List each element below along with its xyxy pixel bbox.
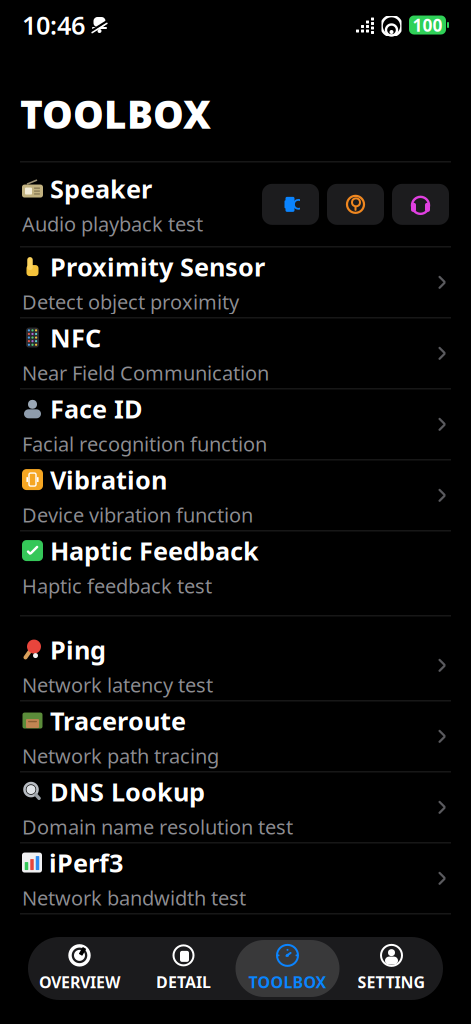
staticText: SETTING [357, 971, 425, 993]
button[interactable]: OVERVIEW [27, 940, 131, 997]
staticText: Face ID [50, 392, 143, 425]
staticText: Vibration [50, 463, 167, 496]
staticText: Facial recognition function [22, 430, 267, 457]
button[interactable]: Face ID [0, 389, 471, 459]
button[interactable]: SETTING [339, 940, 443, 997]
staticText: TOOLBOX [248, 971, 326, 993]
staticText: Near Field Communication [22, 359, 269, 386]
button[interactable]: Traceroute [0, 701, 471, 771]
staticText: Network latency test [22, 671, 213, 698]
button[interactable]: Play through headphones [392, 184, 449, 225]
staticText: iPerf3 [49, 846, 123, 879]
staticText: Audio playback test [22, 210, 203, 237]
staticText: Speaker [50, 172, 152, 205]
button[interactable]: Play through speaker [262, 184, 319, 225]
button[interactable]: TOOLBOX [235, 940, 339, 997]
button[interactable]: Play through receiver [327, 184, 384, 225]
staticText: Traceroute [50, 704, 186, 737]
staticText: OVERVIEW [39, 971, 120, 993]
staticText: Domain name resolution test [22, 813, 293, 840]
button[interactable]: Vibration [0, 460, 471, 530]
staticText: Haptic Feedback [50, 534, 259, 567]
staticText: Device vibration function [22, 501, 253, 528]
button[interactable]: Ping [0, 630, 471, 700]
staticText: DETAIL [156, 971, 211, 993]
staticText: NFC [50, 321, 101, 354]
staticText: TOOLBOX [20, 88, 211, 139]
button[interactable]: NFC [0, 318, 471, 388]
button[interactable]: Haptic Feedback [0, 531, 471, 601]
staticText: Network bandwidth test [22, 884, 246, 911]
staticText: Proximity Sensor [50, 250, 265, 283]
staticText: Haptic feedback test [22, 572, 212, 599]
staticText: 10:46 [22, 8, 85, 42]
staticText: DNS Lookup [50, 775, 205, 808]
button[interactable]: DETAIL [131, 940, 235, 997]
button[interactable]: iPerf3 [0, 843, 471, 913]
staticText: Ping [50, 633, 106, 666]
button[interactable]: DNS Lookup [0, 772, 471, 842]
staticText: Detect object proximity [22, 288, 239, 315]
button[interactable]: Proximity Sensor [0, 247, 471, 317]
staticText: Network path tracing [22, 742, 219, 769]
staticText: 100 [412, 13, 442, 36]
